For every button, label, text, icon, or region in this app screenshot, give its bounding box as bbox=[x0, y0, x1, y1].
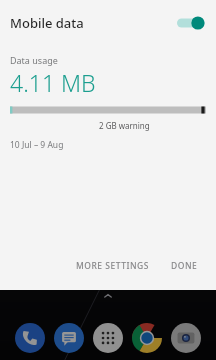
button[interactable]: DONE bbox=[165, 255, 204, 277]
button[interactable]: Mobile data bbox=[0, 0, 216, 46]
staticText: 2 GB warning bbox=[99, 120, 150, 131]
staticText: Mobile data bbox=[10, 14, 84, 32]
staticText: DONE bbox=[171, 260, 198, 272]
button[interactable]: Mobile data toggle, on bbox=[177, 13, 205, 33]
staticText: MORE SETTINGS bbox=[76, 260, 149, 272]
staticText: 10 Jul – 9 Aug bbox=[10, 139, 64, 151]
button[interactable] bbox=[0, 105, 216, 115]
button[interactable]: Messages bbox=[52, 321, 86, 355]
staticText: Data usage bbox=[10, 54, 58, 66]
button[interactable]: Phone bbox=[13, 321, 47, 355]
staticText: 4.11 MB bbox=[10, 67, 96, 98]
button[interactable]: Camera bbox=[169, 321, 203, 355]
button[interactable]: Chrome bbox=[130, 321, 164, 355]
button[interactable]: MORE SETTINGS bbox=[70, 255, 155, 277]
button[interactable]: All apps bbox=[91, 321, 125, 355]
